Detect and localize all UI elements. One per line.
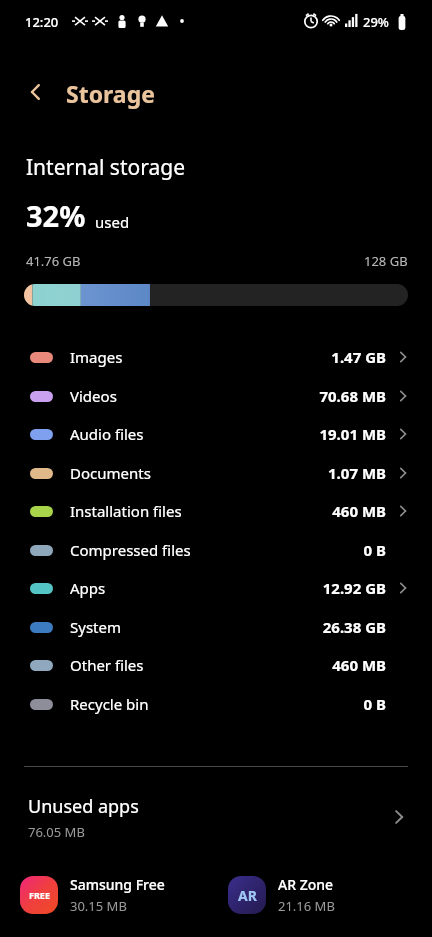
staticText: 1.07 MB	[328, 463, 386, 483]
staticText: 0 B	[363, 540, 386, 560]
button[interactable]: AR	[228, 868, 335, 922]
staticText: AR Zone	[278, 875, 334, 894]
button[interactable]: Back	[16, 72, 56, 112]
staticText: 70.68 MB	[319, 386, 386, 406]
button[interactable]: Documents	[0, 454, 432, 492]
staticText: Samsung Free	[70, 875, 165, 894]
button[interactable]: Installation files	[0, 492, 432, 530]
staticText: Documents	[70, 463, 151, 483]
staticText: 21.16 MB	[278, 897, 335, 915]
staticText: 30.15 MB	[70, 897, 127, 915]
staticText: 76.05 MB	[28, 823, 85, 841]
button[interactable]: Other files	[0, 646, 432, 684]
button[interactable]: FREE	[20, 868, 165, 922]
button[interactable]: Unused apps	[0, 786, 432, 848]
staticText: Audio files	[70, 424, 144, 444]
staticText: AR	[238, 886, 257, 905]
staticText: Videos	[70, 386, 117, 406]
staticText: Installation files	[70, 501, 182, 521]
staticText: 26.38 GB	[322, 617, 386, 637]
staticText: Compressed files	[70, 540, 191, 560]
staticText: Other files	[70, 655, 144, 675]
staticText: 460 MB	[332, 655, 386, 675]
staticText: 128 GB	[364, 252, 408, 270]
staticText: 41.76 GB	[26, 252, 81, 270]
staticText: System	[70, 617, 121, 637]
button[interactable]: Compressed files	[0, 531, 432, 569]
staticText: Storage	[66, 78, 155, 109]
staticText: FREE	[29, 889, 50, 901]
button[interactable]: Apps	[0, 569, 432, 607]
staticText: Images	[70, 347, 123, 367]
staticText: 12:20	[25, 13, 59, 31]
button[interactable]: System	[0, 608, 432, 646]
button[interactable]: Recycle bin	[0, 685, 432, 723]
button[interactable]: Images	[0, 338, 432, 376]
staticText: 19.01 MB	[319, 424, 386, 444]
staticText: Recycle bin	[70, 694, 149, 714]
staticText: Internal storage	[26, 153, 185, 182]
button[interactable]: Audio files	[0, 415, 432, 453]
staticText: 32%	[26, 196, 86, 235]
button[interactable]: Videos	[0, 377, 432, 415]
staticText: 1.47 GB	[331, 347, 386, 367]
staticText: 29%	[363, 13, 389, 31]
staticText: used	[95, 212, 130, 232]
staticText: 0 B	[363, 694, 386, 714]
staticText: Unused apps	[28, 794, 139, 819]
staticText: 12.92 GB	[322, 578, 386, 598]
staticText: 460 MB	[332, 501, 386, 521]
staticText: Apps	[70, 578, 106, 598]
